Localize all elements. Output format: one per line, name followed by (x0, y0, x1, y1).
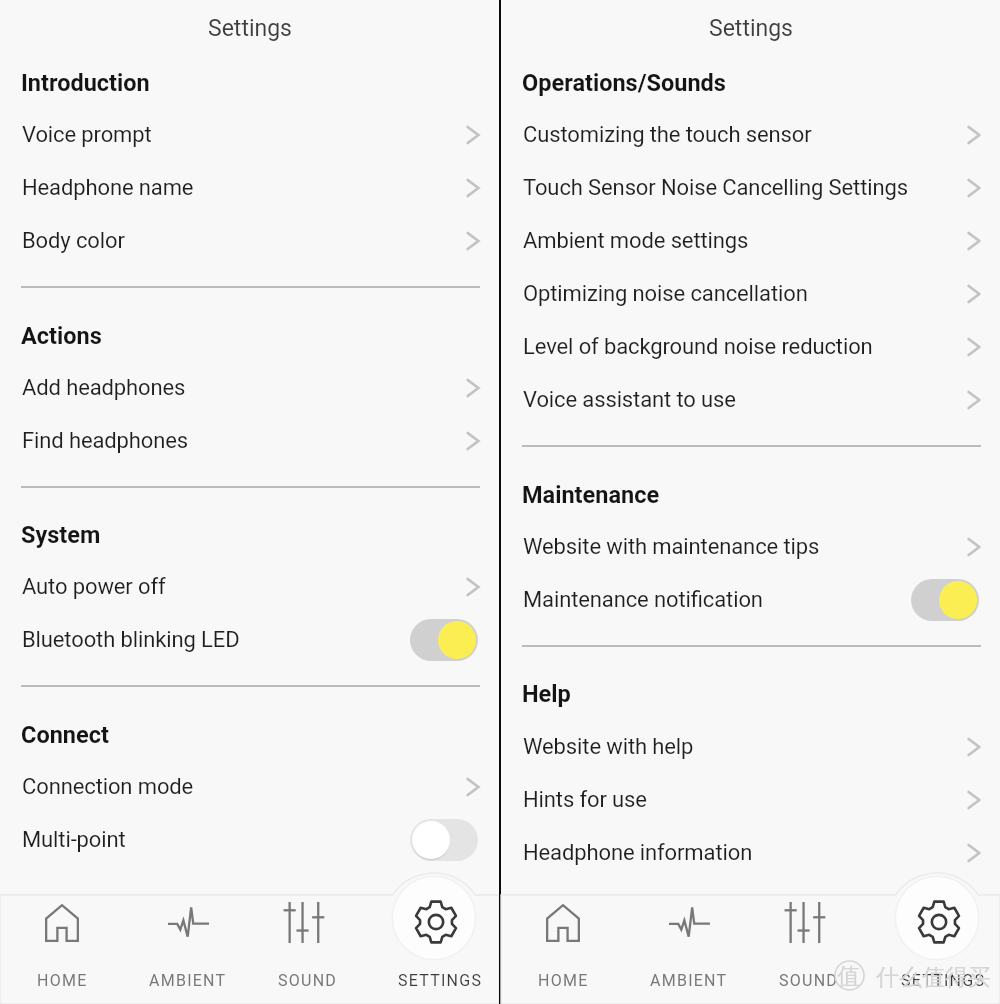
staticText: Help (522, 680, 571, 708)
button[interactable]: Multi-point (0, 814, 499, 866)
staticText: Introduction (21, 69, 150, 97)
staticText: Website with help (523, 734, 694, 760)
button[interactable]: Ambient (627, 880, 751, 1004)
staticText: HOME (37, 971, 88, 990)
staticText: Multi-point (22, 827, 126, 853)
staticText: SOUND (278, 971, 338, 990)
button[interactable]: Add headphones (0, 362, 499, 414)
staticText: Headphone name (22, 175, 194, 201)
button[interactable]: Ambient (126, 880, 250, 1004)
button[interactable]: Touch Sensor Noise Cancelling Settings (501, 162, 1000, 214)
button[interactable]: Home (0, 880, 124, 1004)
staticText: 值 (837, 962, 860, 991)
staticText: Website with maintenance tips (523, 534, 820, 560)
button[interactable]: Website with help (501, 721, 1000, 773)
staticText: AMBIENT (650, 971, 728, 990)
button[interactable]: Find headphones (0, 415, 499, 467)
button[interactable]: Customizing the touch sensor (501, 109, 1000, 161)
staticText: 什么值得买 (876, 963, 991, 992)
button[interactable]: Bluetooth blinking LED (0, 614, 499, 666)
button[interactable]: Sound (747, 880, 871, 1004)
staticText: SETTINGS (398, 971, 483, 990)
button[interactable]: Voice assistant to use (501, 374, 1000, 426)
staticText: Maintenance notification (523, 587, 763, 613)
staticText: Add headphones (22, 375, 186, 401)
button[interactable]: Optimizing noise cancellation (501, 268, 1000, 320)
button[interactable]: Voice prompt (0, 109, 499, 161)
button[interactable]: Level of background noise reduction (501, 321, 1000, 373)
staticText: Body color (22, 228, 125, 254)
button[interactable]: Sound (246, 880, 370, 1004)
staticText: Connection mode (22, 774, 194, 800)
staticText: Connect (21, 721, 109, 749)
button[interactable]: Maintenance notification (501, 574, 1000, 626)
button[interactable]: Settings (378, 880, 502, 1004)
staticText: HOME (538, 971, 589, 990)
button[interactable]: Home (501, 880, 625, 1004)
staticText: Settings (208, 15, 292, 42)
staticText: Voice prompt (22, 122, 152, 148)
button[interactable]: Settings (881, 880, 1000, 1004)
button[interactable]: Body color (0, 215, 499, 267)
button[interactable]: Connection mode (0, 761, 499, 813)
staticText: Level of background noise reduction (523, 334, 873, 360)
staticText: Maintenance (522, 481, 660, 509)
staticText: System (21, 521, 101, 549)
button[interactable]: Headphone information (501, 827, 1000, 879)
button[interactable]: Website with maintenance tips (501, 521, 1000, 573)
staticText: SOUND (779, 971, 839, 990)
staticText: Auto power off (22, 574, 166, 600)
staticText: Actions (21, 322, 102, 350)
staticText: Settings (709, 15, 793, 42)
staticText: SETTINGS (901, 971, 986, 990)
button[interactable]: Hints for use (501, 774, 1000, 826)
button[interactable]: Headphone name (0, 162, 499, 214)
staticText: Headphone information (523, 840, 753, 866)
staticText: Voice assistant to use (523, 387, 736, 413)
staticText: Operations/Sounds (522, 69, 726, 97)
button[interactable]: Auto power off (0, 561, 499, 613)
staticText: AMBIENT (149, 971, 227, 990)
staticText: Optimizing noise cancellation (523, 281, 808, 307)
staticText: Customizing the touch sensor (523, 122, 812, 148)
staticText: Find headphones (22, 428, 189, 454)
button[interactable]: Ambient mode settings (501, 215, 1000, 267)
staticText: Ambient mode settings (523, 228, 749, 254)
staticText: Hints for use (523, 787, 647, 813)
staticText: Bluetooth blinking LED (22, 627, 240, 653)
staticText: Touch Sensor Noise Cancelling Settings (523, 175, 908, 201)
